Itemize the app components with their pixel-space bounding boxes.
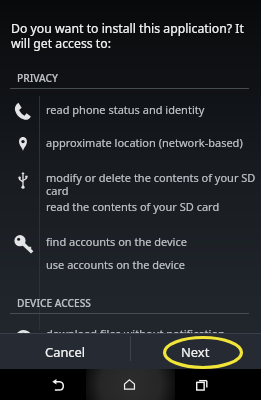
staticText: Next	[181, 343, 210, 361]
staticText: download files without notification	[46, 326, 225, 341]
button[interactable]: download files without notification	[46, 326, 258, 341]
button[interactable]: Home	[116, 369, 144, 400]
button[interactable]: modify or delete the contents of your SD…	[46, 170, 258, 198]
staticText: DEVICE ACCESS	[17, 296, 91, 310]
staticText: Do you want to install this application?…	[11, 20, 251, 51]
staticText: Cancel	[45, 343, 86, 361]
button[interactable]: Back	[44, 369, 72, 400]
button[interactable]: approximate location (network-based)	[46, 135, 258, 150]
staticText: PRIVACY	[17, 71, 59, 85]
staticText: read phone status and identity	[46, 102, 205, 117]
button[interactable]: read the contents of your SD card	[46, 199, 258, 214]
staticText: approximate location (network-based)	[46, 135, 243, 150]
staticText: use accounts on the device	[46, 257, 186, 272]
button[interactable]: Cancel	[0, 334, 130, 369]
button[interactable]: find accounts on the device	[46, 234, 258, 249]
button[interactable]: read phone status and identity	[46, 102, 258, 117]
button[interactable]: use accounts on the device	[46, 257, 258, 272]
staticText: find accounts on the device	[46, 234, 187, 249]
button[interactable]: Recents	[188, 369, 216, 400]
staticText: read the contents of your SD card	[46, 199, 220, 214]
staticText: modify or delete the contents of your SD…	[46, 170, 258, 198]
button[interactable]: Next	[130, 334, 261, 369]
